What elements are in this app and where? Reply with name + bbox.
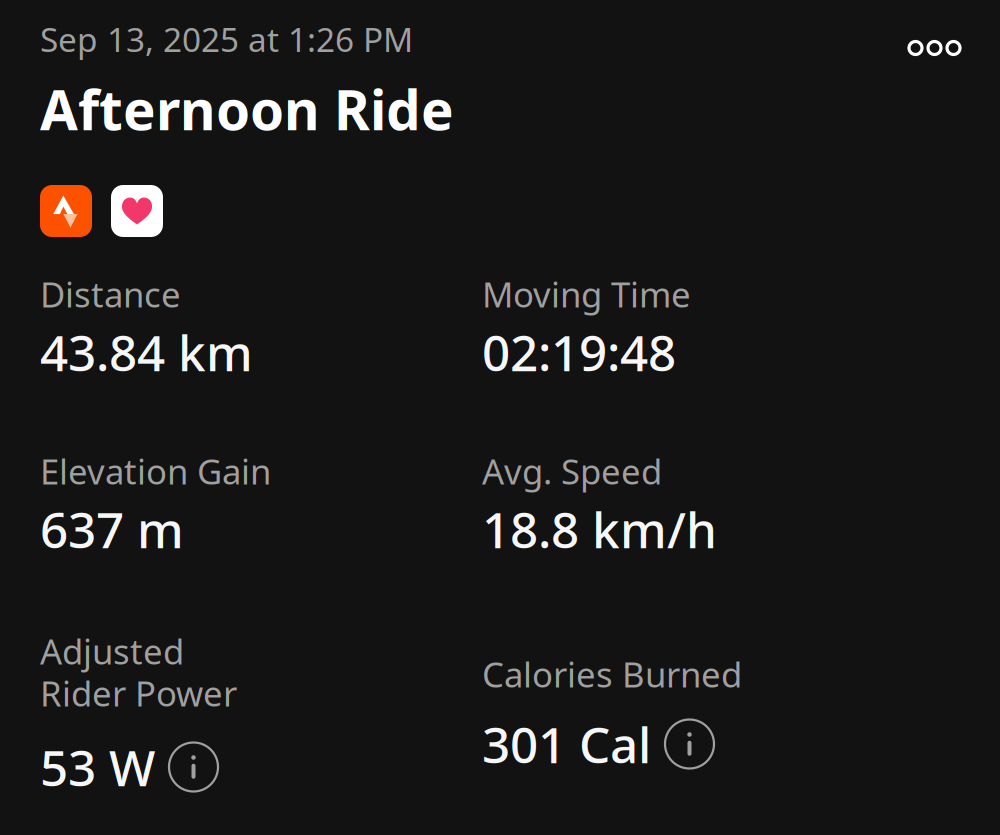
- staticText: Distance: [40, 271, 181, 317]
- button[interactable]: Apple Health: [111, 185, 163, 237]
- staticText: 18.8 km/h: [482, 496, 717, 562]
- staticText: Moving Time: [482, 271, 691, 317]
- staticText: Elevation Gain: [40, 448, 271, 494]
- button[interactable]: About Adjusted Rider Power: [169, 742, 218, 791]
- staticText: Calories Burned: [482, 651, 742, 697]
- staticText: 53 W: [40, 734, 155, 800]
- button[interactable]: About Calories Burned: [665, 719, 714, 768]
- staticText: Adjusted: [40, 628, 184, 674]
- staticText: 02:19:48: [482, 319, 676, 385]
- staticText: Rider Power: [40, 670, 237, 716]
- staticText: 301 Cal: [482, 711, 651, 777]
- button[interactable]: More options: [864, 8, 960, 70]
- staticText: 43.84 km: [40, 319, 253, 385]
- staticText: Afternoon Ride: [40, 73, 454, 145]
- button[interactable]: Strava: [40, 185, 92, 237]
- staticText: Avg. Speed: [482, 448, 662, 494]
- staticText: Sep 13, 2025 at 1:26 PM: [40, 17, 413, 61]
- staticText: 637 m: [40, 496, 184, 562]
